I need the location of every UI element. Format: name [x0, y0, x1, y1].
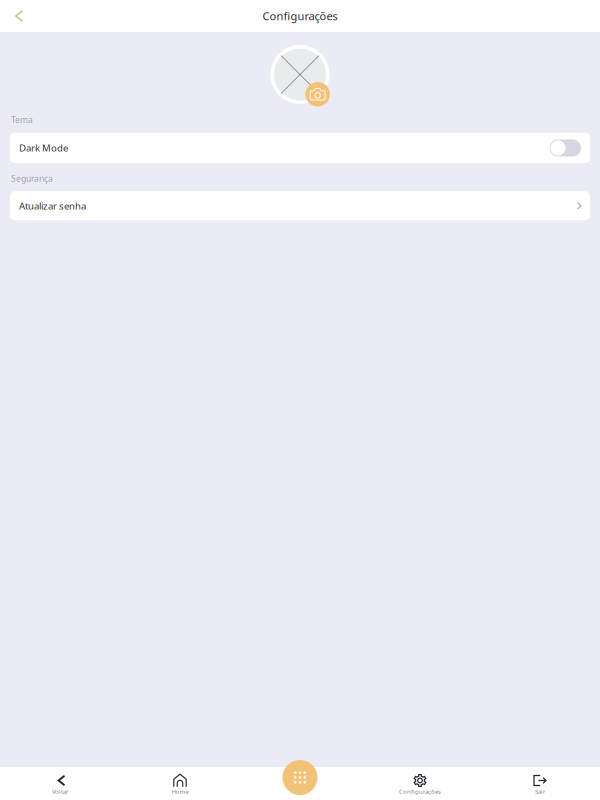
staticText: Home — [171, 787, 188, 796]
staticText: Voltar — [52, 787, 68, 796]
staticText: Segurança — [11, 173, 53, 184]
staticText: Atualizar senha — [19, 199, 86, 212]
staticText: Tema — [11, 114, 33, 126]
button[interactable]: Sair — [480, 767, 600, 800]
button[interactable]: Voltar — [0, 767, 120, 800]
button[interactable] — [240, 767, 360, 800]
button[interactable]: Dark Mode — [10, 133, 590, 163]
staticText: Sair — [535, 787, 545, 796]
staticText: Dark Mode — [19, 141, 68, 154]
button[interactable]: Configurações — [360, 767, 480, 800]
button[interactable]: Change photo — [305, 82, 330, 106]
button[interactable]: Home — [120, 767, 240, 800]
button[interactable]: Back — [4, 1, 34, 31]
button[interactable]: Atualizar senha — [10, 191, 590, 220]
staticText: Configurações — [399, 787, 441, 796]
staticText: Configurações — [262, 8, 337, 24]
button[interactable]: Menu — [282, 760, 317, 795]
